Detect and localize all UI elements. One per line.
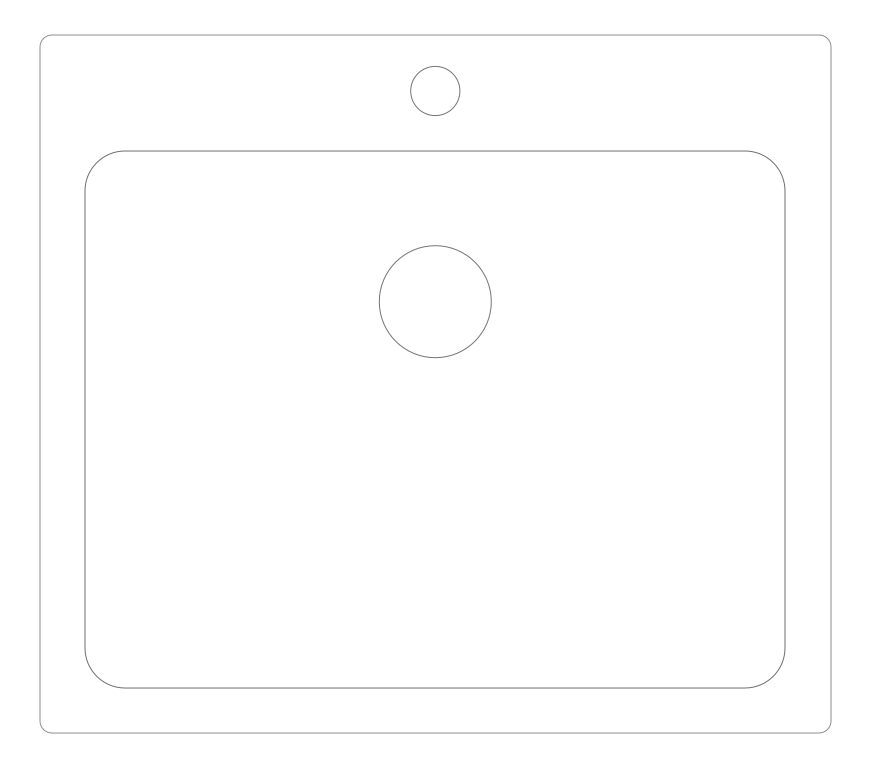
button[interactable]: Dial — [379, 246, 491, 358]
button[interactable]: Device body outline — [40, 35, 831, 733]
button[interactable]: Display area outline — [85, 151, 785, 688]
button[interactable]: Sensor — [411, 66, 460, 116]
